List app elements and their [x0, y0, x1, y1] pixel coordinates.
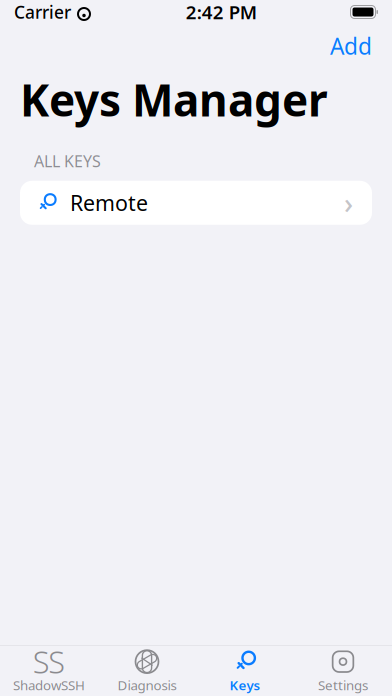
button[interactable]: S — [0, 643, 98, 696]
staticText: ALL KEYS — [34, 150, 101, 172]
staticText: Diagnosis — [117, 676, 176, 694]
staticText: ShadowSSH — [13, 676, 85, 694]
staticText: S — [33, 641, 50, 682]
staticText: Keys — [229, 676, 260, 694]
staticText: Settings — [318, 676, 368, 694]
staticText: › — [344, 184, 353, 221]
staticText: Add — [330, 31, 372, 61]
staticText: Remote — [70, 189, 148, 217]
button[interactable]: Keys — [196, 643, 294, 696]
staticText: 2:42 PM — [186, 0, 257, 24]
button[interactable]: Add — [320, 26, 382, 66]
staticText: Carrier — [14, 0, 71, 23]
staticText: S — [48, 641, 65, 682]
button[interactable]: Diagnosis — [98, 643, 196, 696]
button[interactable]: Settings — [294, 643, 392, 696]
button[interactable]: Remote — [20, 181, 372, 225]
staticText: Keys Manager — [20, 70, 328, 128]
